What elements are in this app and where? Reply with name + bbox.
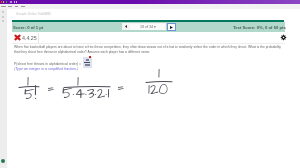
- staticText: When five basketball players are about t…: [14, 45, 282, 49]
- staticText: 5!: [24, 84, 37, 105]
- staticText: 4.4.25: [22, 35, 37, 41]
- other: Incorrect: [15, 35, 20, 40]
- staticText: =: [117, 77, 125, 98]
- staticText: 4 of 34: [41, 12, 51, 16]
- staticText: (Type an integer or a simplified fractio…: [14, 67, 79, 71]
- button[interactable]: Sample Online Test 001: [16, 12, 50, 16]
- staticText: =: [47, 78, 55, 99]
- button[interactable]: Settings: [281, 35, 286, 40]
- button[interactable]: Test Score: 0%, 0 of 60 pts: [233, 25, 286, 30]
- staticText: P(shoot free throws in alphabetical orde…: [14, 62, 82, 66]
- button[interactable]: Previous question: [122, 23, 130, 30]
- button[interactable]: 19 of 34 ▾: [130, 24, 165, 30]
- staticText: 19 of 34 ▾: [140, 25, 156, 29]
- staticText: that they shoot free throws in alphabeti…: [14, 50, 151, 54]
- staticText: 1: [158, 63, 160, 84]
- button[interactable]: Next question: [167, 23, 176, 31]
- staticText: 5·4·3·2·1: [62, 83, 110, 104]
- button[interactable]: Score: 0 of 1 pt: [13, 25, 44, 30]
- staticText: 1: [77, 71, 79, 92]
- staticText: 120: [148, 79, 168, 100]
- button[interactable]: [83, 57, 92, 68]
- button[interactable]: Account: [1, 159, 5, 163]
- staticText: 1: [27, 71, 29, 92]
